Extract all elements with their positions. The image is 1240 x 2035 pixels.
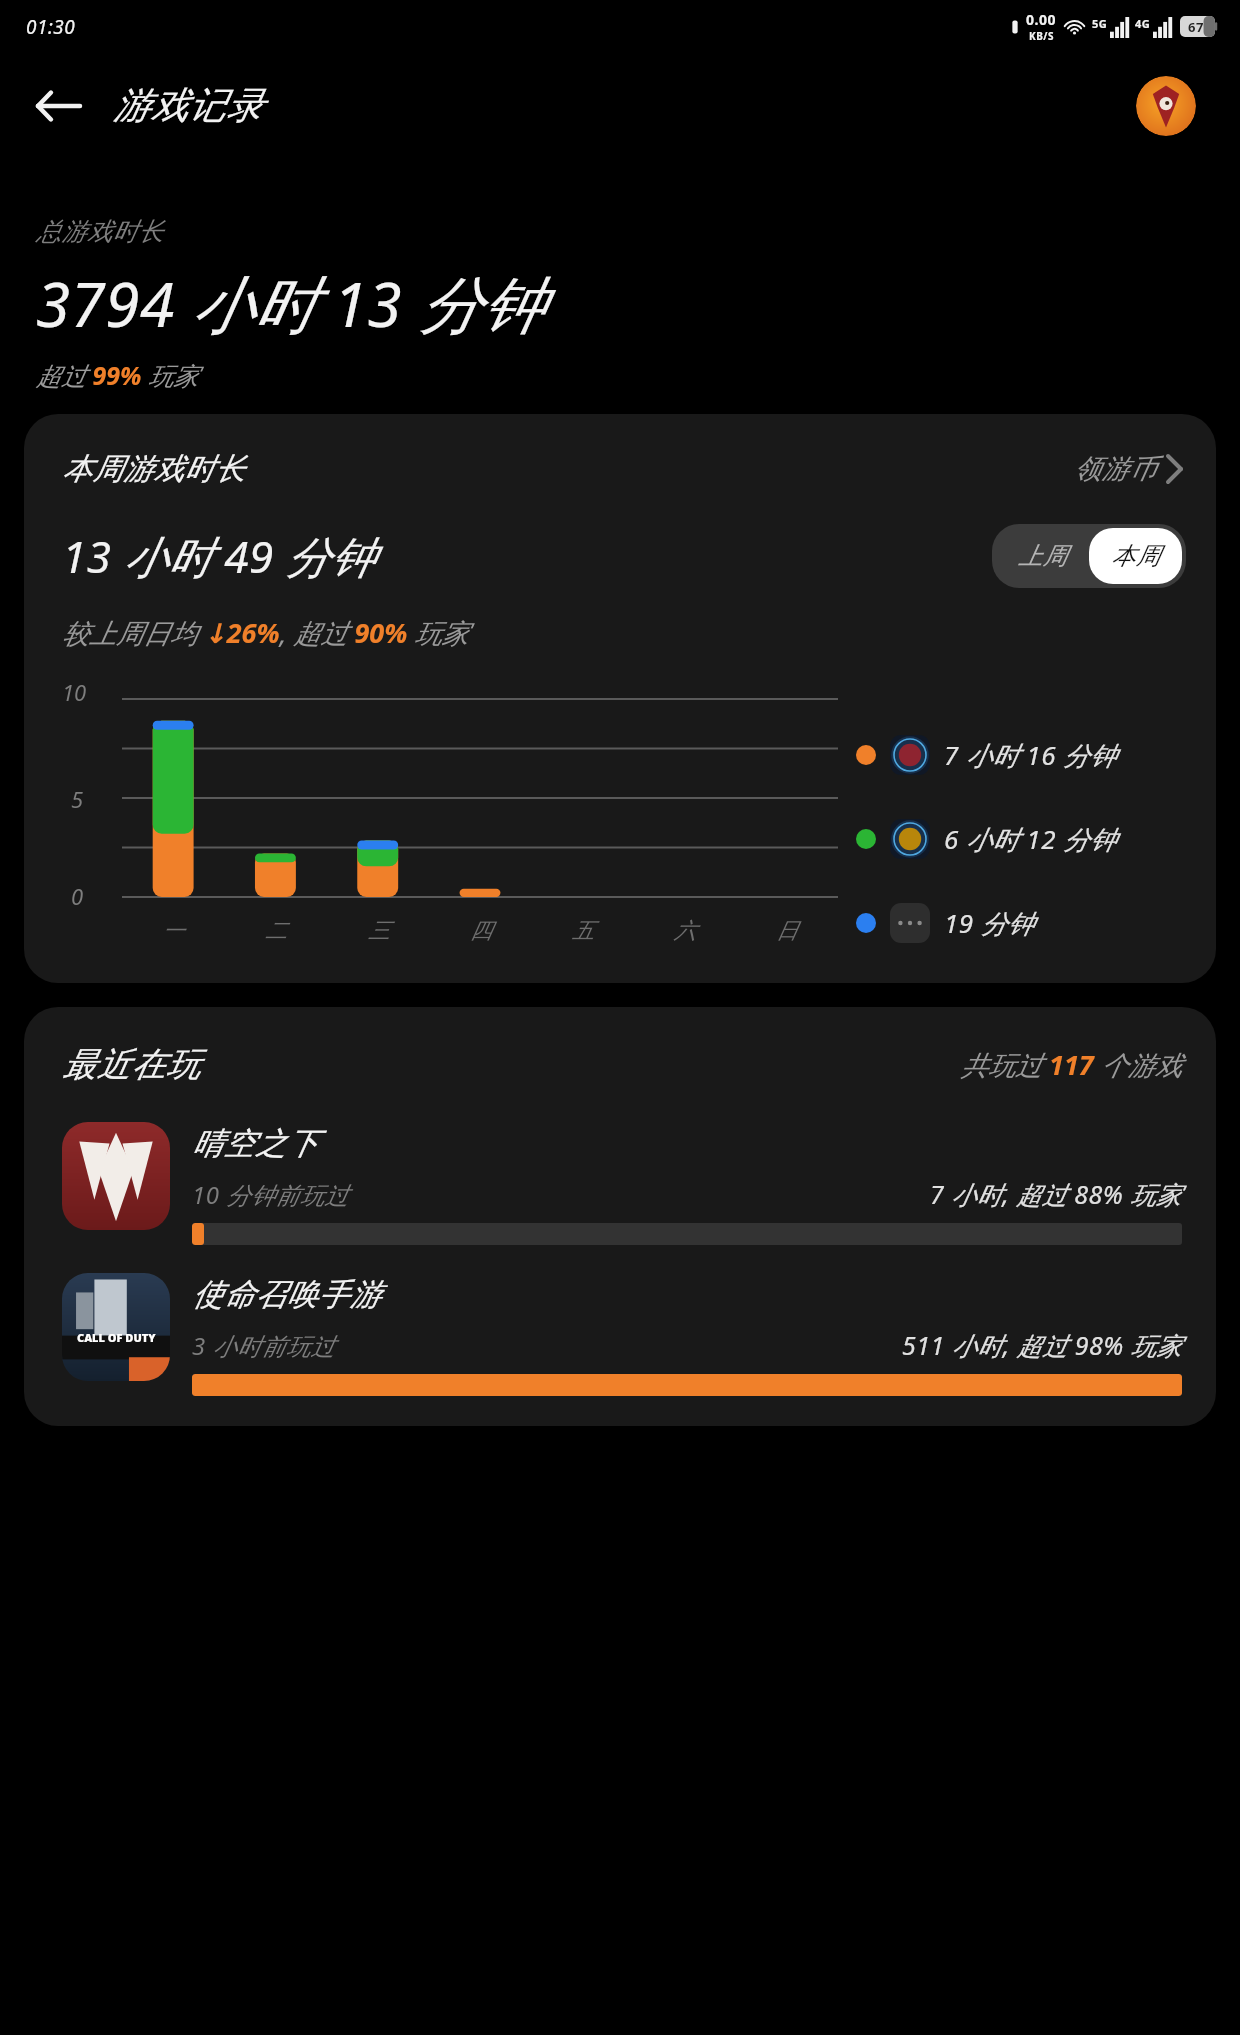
staticText: CALL OF DUTY: [77, 1330, 156, 1345]
staticText: 13 小时 49 分钟: [62, 526, 375, 586]
staticText: KB/S: [1029, 29, 1054, 43]
staticText: 二: [265, 917, 288, 945]
button[interactable]: 晴空之下: [62, 1122, 1182, 1245]
button[interactable]: Back: [30, 78, 86, 134]
staticText: 7 小时, 超过 88% 玩家: [930, 1177, 1182, 1211]
button[interactable]: Profile: [1136, 76, 1196, 136]
staticText: 0.00: [1026, 10, 1056, 29]
button[interactable]: CALL OF DUTY: [62, 1273, 1182, 1396]
staticText: 最近在玩: [62, 1043, 200, 1086]
staticText: 5: [71, 784, 84, 814]
staticText: 共玩过 117 个游戏: [961, 1046, 1182, 1083]
staticText: 7 小时 16 分钟: [944, 737, 1117, 773]
staticText: 19 分钟: [944, 905, 1034, 941]
staticText: 10 分钟前玩过: [192, 1178, 349, 1211]
staticText: 晴空之下: [192, 1124, 318, 1163]
button[interactable]: 本周: [1089, 528, 1182, 584]
staticText: 六: [674, 917, 697, 945]
staticText: 总游戏时长: [36, 216, 164, 247]
staticText: 日: [776, 917, 799, 945]
button[interactable]: 领游币: [1070, 448, 1186, 490]
staticText: 5G: [1092, 16, 1108, 31]
staticText: 超过 99% 玩家: [36, 358, 198, 392]
staticText: 三: [368, 917, 391, 945]
staticText: 67: [1188, 18, 1204, 36]
staticText: 10: [62, 677, 87, 707]
staticText: 01:30: [26, 14, 76, 40]
staticText: 本周: [1111, 541, 1160, 571]
staticText: 本周游戏时长: [62, 450, 245, 488]
staticText: 511 小时, 超过 98% 玩家: [902, 1328, 1182, 1362]
staticText: 3 小时前玩过: [192, 1329, 335, 1362]
staticText: 上周: [1018, 541, 1067, 571]
staticText: 4G: [1135, 16, 1151, 31]
staticText: 3794 小时 13 分钟: [36, 261, 544, 346]
staticText: 6 小时 12 分钟: [944, 821, 1117, 857]
staticText: 使命召唤手游: [192, 1275, 381, 1314]
staticText: 一: [162, 917, 185, 945]
staticText: 领游币: [1074, 452, 1157, 486]
button[interactable]: 上周: [996, 528, 1089, 584]
staticText: 四: [470, 917, 493, 945]
staticText: 游戏记录: [113, 82, 263, 129]
staticText: 五: [572, 917, 595, 945]
staticText: 较上周日均 ↓26%, 超过 90% 玩家: [62, 614, 469, 651]
staticText: 0: [71, 881, 84, 911]
